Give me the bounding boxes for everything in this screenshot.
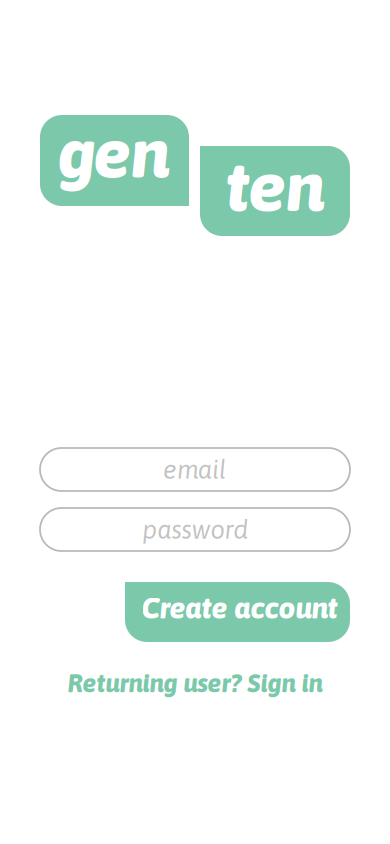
staticText: Create account [141, 591, 337, 625]
button[interactable]: password [40, 508, 350, 551]
staticText: Returning user? Sign in [67, 668, 322, 697]
staticText: email [163, 455, 227, 484]
staticText: gen [57, 113, 169, 192]
button[interactable]: Returning user? Sign in [0, 666, 390, 700]
staticText: ten [225, 146, 324, 226]
button[interactable]: Create account [125, 582, 350, 642]
staticText: password [142, 515, 247, 544]
button[interactable]: email [40, 448, 350, 491]
